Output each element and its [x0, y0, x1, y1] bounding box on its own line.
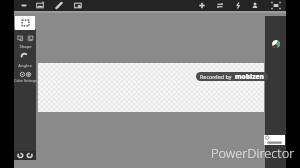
button[interactable]: Brush — [53, 0, 65, 11]
staticText: Recorded by — [200, 73, 232, 80]
staticText: mobizen — [235, 72, 265, 81]
button[interactable]: Add — [196, 0, 208, 11]
button[interactable]: Redo — [25, 151, 34, 160]
button[interactable]: Profile — [249, 0, 261, 11]
staticText: Color Settings — [14, 78, 37, 83]
button[interactable]: Camera — [72, 0, 84, 11]
staticText: PowerDirector — [211, 144, 295, 161]
button[interactable]: Align horizontal — [16, 34, 25, 43]
button[interactable]: Swap — [214, 0, 226, 11]
button[interactable]: Add image — [34, 0, 46, 11]
button[interactable]: Fullscreen — [270, 0, 282, 11]
button[interactable]: Angles — [20, 52, 29, 61]
button[interactable]: Color — [18, 70, 27, 79]
staticText: Angles — [18, 63, 32, 69]
button[interactable]: Color picker — [272, 40, 280, 48]
staticText: Shape — [19, 44, 32, 50]
button[interactable]: Flash — [232, 0, 244, 11]
button[interactable]: Menu — [18, 0, 30, 11]
button[interactable]: Undo — [16, 151, 25, 160]
button[interactable]: Align vertical — [26, 34, 35, 43]
button[interactable]: Opacity — [24, 70, 33, 79]
button[interactable]: Selection tool — [15, 16, 35, 30]
